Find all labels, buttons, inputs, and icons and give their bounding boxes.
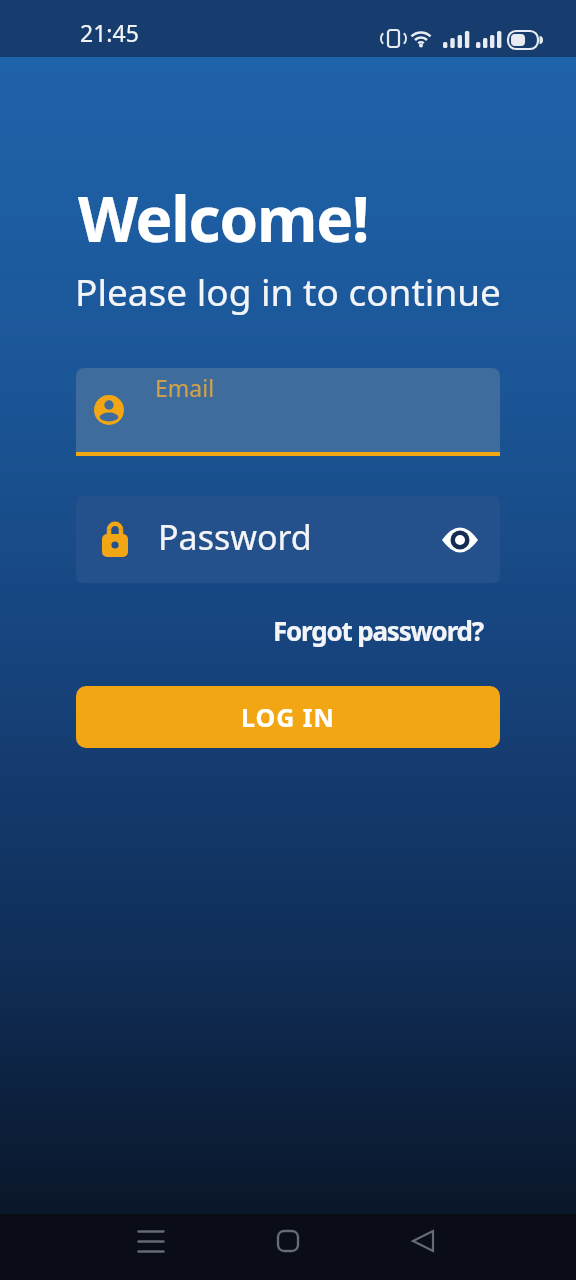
- staticText: Password: [158, 514, 312, 560]
- staticText: Please log in to continue: [75, 266, 501, 316]
- staticText: Email: [155, 372, 215, 403]
- button[interactable]: Password: [76, 496, 500, 583]
- button[interactable]: [127, 1223, 175, 1271]
- staticText: LOG IN: [241, 700, 335, 734]
- button[interactable]: [264, 1223, 312, 1271]
- button[interactable]: [399, 1223, 447, 1271]
- button[interactable]: LOG IN: [76, 686, 500, 748]
- staticText: 21:45: [80, 17, 139, 48]
- button[interactable]: Forgot password?: [273, 613, 483, 648]
- button[interactable]: [436, 520, 484, 560]
- button[interactable]: Email: [76, 368, 500, 456]
- staticText: Welcome!: [78, 176, 369, 260]
